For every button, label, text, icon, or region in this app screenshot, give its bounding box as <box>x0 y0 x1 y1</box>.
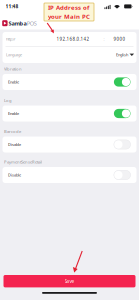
staticText: POS <box>27 20 37 27</box>
button[interactable]: Enable <box>2 74 136 90</box>
staticText: English <box>116 52 128 57</box>
staticText: 192.168.0.142 <box>56 36 89 42</box>
staticText: Disable <box>8 142 21 147</box>
staticText: http:// <box>6 36 15 42</box>
staticText: Log <box>4 98 12 103</box>
staticText: IP Address of <box>48 3 89 12</box>
staticText: Language <box>6 52 22 57</box>
staticText: PaymentSenseRetail <box>4 159 42 165</box>
staticText: Samba <box>8 20 26 27</box>
staticText: your Main PC <box>48 12 90 21</box>
button[interactable]: http:// <box>0 0 139 300</box>
button[interactable]: Disable <box>2 136 136 152</box>
button[interactable]: Save <box>3 275 135 287</box>
staticText: Save <box>64 278 74 284</box>
staticText: Disable <box>8 172 21 178</box>
button[interactable]: Language <box>0 0 139 300</box>
staticText: 11:48 <box>5 3 18 10</box>
button[interactable]: Enable <box>2 105 136 121</box>
staticText: Vibration <box>4 66 22 72</box>
staticText: Enable <box>8 111 19 116</box>
staticText: 9000 <box>113 36 125 42</box>
staticText: Barcode <box>4 129 21 134</box>
button[interactable]: Disable <box>2 167 136 183</box>
staticText: Enable <box>8 79 19 85</box>
